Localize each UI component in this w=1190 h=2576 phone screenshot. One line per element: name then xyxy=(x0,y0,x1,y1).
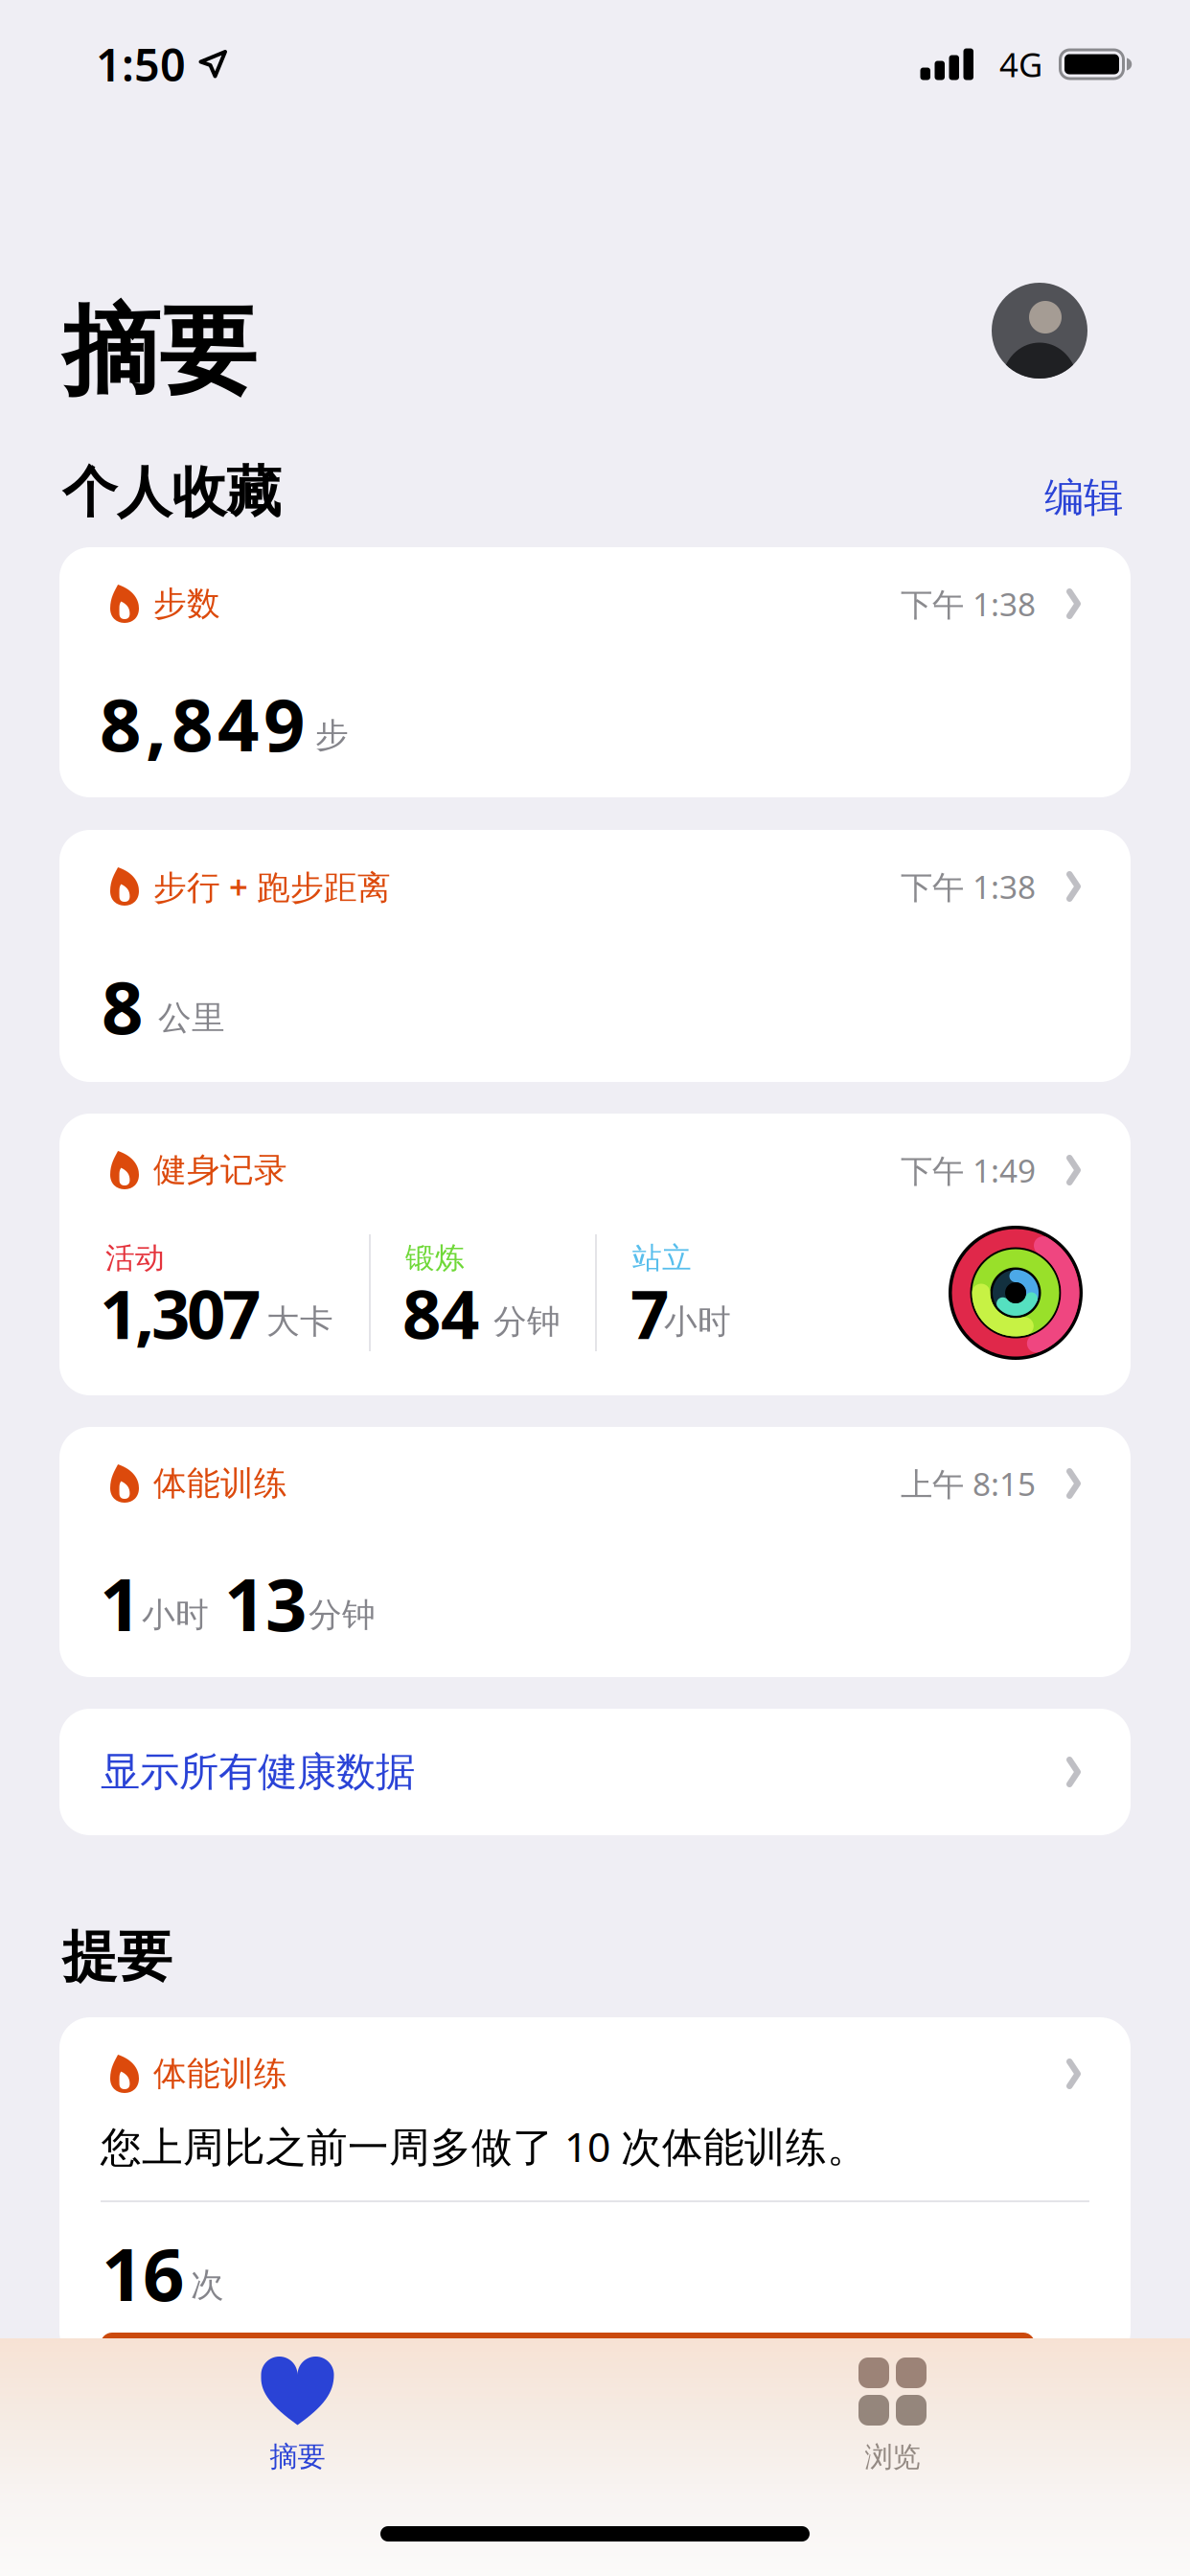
staticText: 体能训练 xyxy=(153,1463,287,1504)
staticText: 下午 1:38 xyxy=(901,865,1036,908)
staticText: 84 xyxy=(402,1268,479,1358)
staticText: 下午 1:49 xyxy=(901,1149,1036,1191)
staticText: 小时 xyxy=(142,1595,209,1635)
staticText: 大卡 xyxy=(266,1301,333,1342)
button[interactable]: 健身记录 xyxy=(59,1114,1131,1395)
staticText: 4G xyxy=(999,42,1042,86)
button[interactable]: 体能训练 xyxy=(59,1427,1131,1677)
staticText: 个人收藏 xyxy=(62,459,281,526)
staticText: 锻炼 xyxy=(405,1240,465,1276)
staticText: 8,849 xyxy=(100,675,305,771)
staticText: 编辑 xyxy=(1044,473,1123,522)
staticText: 7 xyxy=(630,1268,669,1358)
button[interactable]: 体能训练 xyxy=(59,2017,1131,2362)
staticText: 体能训练 xyxy=(153,2053,287,2094)
staticText: 浏览 xyxy=(865,2440,920,2474)
staticText: 步数 xyxy=(153,583,220,624)
button[interactable]: 摘要 xyxy=(0,2338,595,2492)
button[interactable]: 显示所有健康数据 xyxy=(59,1709,1131,1835)
staticText: 您上周比之前一周多做了 10 次体能训练。 xyxy=(101,2119,868,2173)
staticText: 小时 xyxy=(664,1301,731,1342)
staticText: 8 xyxy=(102,957,143,1054)
staticText: 站立 xyxy=(632,1240,692,1276)
staticText: 1,307 xyxy=(100,1268,261,1358)
staticText: 13 xyxy=(224,1554,307,1651)
button[interactable]: 编辑 xyxy=(1044,473,1123,522)
button[interactable]: 浏览 xyxy=(595,2338,1190,2492)
staticText: 显示所有健康数据 xyxy=(101,1748,415,1796)
staticText: 步 xyxy=(315,715,349,756)
staticText: 1:50 xyxy=(96,34,186,94)
button[interactable]: 个人资料 xyxy=(992,283,1087,379)
staticText: 分钟 xyxy=(309,1595,376,1635)
staticText: 次 xyxy=(191,2265,224,2305)
staticText: 下午 1:38 xyxy=(901,583,1036,625)
staticText: 活动 xyxy=(105,1240,165,1276)
staticText: 摘要 xyxy=(270,2439,325,2474)
staticText: 步行 + 跑步距离 xyxy=(153,864,391,908)
staticText: 摘要 xyxy=(62,292,256,411)
staticText: 提要 xyxy=(62,1923,172,1991)
staticText: 健身记录 xyxy=(153,1150,287,1191)
staticText: 1 xyxy=(100,1554,141,1651)
staticText: 公里 xyxy=(158,998,225,1038)
button[interactable]: 步行 + 跑步距离 xyxy=(59,830,1131,1082)
staticText: 分钟 xyxy=(493,1301,561,1342)
button[interactable]: 步数 xyxy=(59,547,1131,797)
staticText: 上午 8:15 xyxy=(901,1462,1036,1505)
staticText: 16 xyxy=(102,2224,184,2321)
